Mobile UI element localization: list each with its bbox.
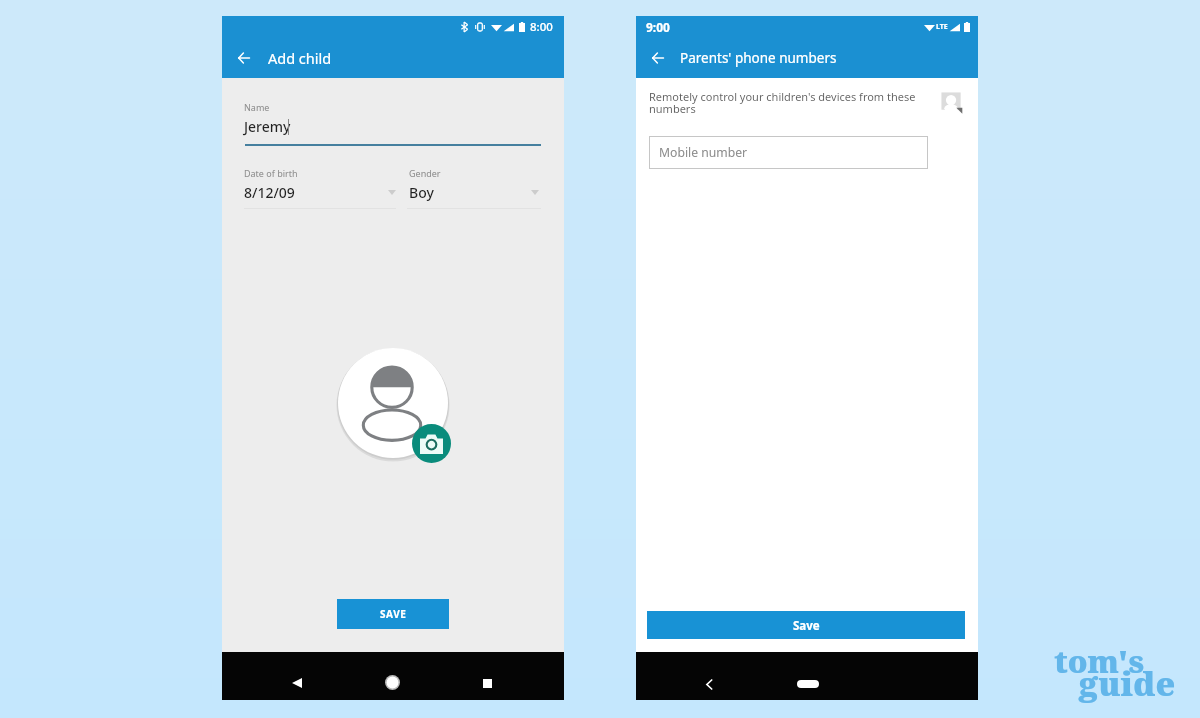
button[interactable]: Recent apps bbox=[472, 668, 503, 699]
staticText: 8:00 bbox=[530, 19, 553, 35]
button[interactable]: Mobile number bbox=[649, 136, 928, 169]
staticText: Boy bbox=[409, 183, 434, 202]
staticText: LTE bbox=[936, 22, 948, 32]
button[interactable]: Change photo bbox=[412, 424, 451, 463]
staticText: Save bbox=[793, 618, 820, 634]
button[interactable]: Name bbox=[244, 98, 541, 146]
staticText: 9:00 bbox=[646, 19, 670, 35]
staticText: Gender bbox=[409, 167, 441, 179]
button[interactable]: Navigate up bbox=[222, 38, 266, 78]
staticText: 8/12/09 bbox=[244, 183, 295, 202]
staticText: guide bbox=[1079, 661, 1176, 706]
staticText: tom's bbox=[1054, 640, 1144, 682]
staticText: Parents' phone numbers bbox=[680, 49, 837, 67]
staticText: SAVE bbox=[380, 607, 407, 621]
staticText: Mobile number bbox=[659, 144, 748, 161]
button[interactable]: Home bbox=[377, 667, 408, 698]
button[interactable]: Save bbox=[647, 611, 965, 639]
button[interactable]: Choose a contact bbox=[940, 91, 964, 115]
button[interactable]: Back bbox=[694, 669, 724, 699]
button[interactable]: Back bbox=[281, 667, 312, 698]
staticText: Date of birth bbox=[244, 167, 298, 179]
staticText: Add child bbox=[268, 48, 332, 68]
button[interactable]: Date of birth bbox=[244, 164, 396, 209]
staticText: Name bbox=[244, 101, 270, 113]
staticText: Jeremy bbox=[244, 117, 291, 136]
staticText: Remotely control your children's devices… bbox=[649, 89, 924, 116]
button[interactable]: Home bbox=[793, 669, 823, 699]
button[interactable]: Navigate up bbox=[636, 38, 680, 78]
button[interactable]: SAVE bbox=[337, 599, 449, 629]
button[interactable]: Gender bbox=[407, 164, 541, 209]
